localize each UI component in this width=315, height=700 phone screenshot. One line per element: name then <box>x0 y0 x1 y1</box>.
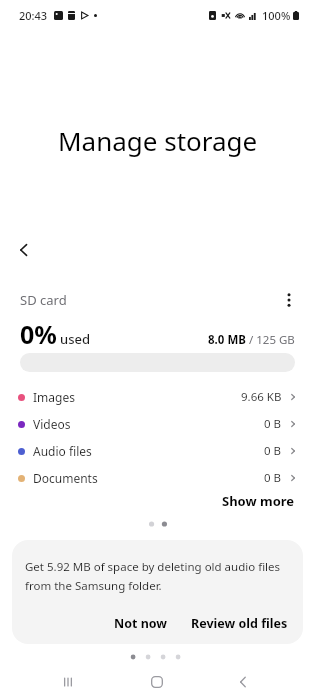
staticText: 9.66 KB <box>241 389 282 405</box>
staticText: Images <box>33 389 75 405</box>
button[interactable]: Images <box>0 386 315 408</box>
staticText: Review old files <box>191 615 288 632</box>
button[interactable]: Audio files <box>0 440 315 462</box>
staticText: 0 B <box>264 443 282 459</box>
button[interactable]: Back <box>6 232 42 268</box>
staticText: Not now <box>114 615 168 632</box>
staticText: from the Samsung folder. <box>25 578 162 594</box>
staticText: Documents <box>33 470 98 486</box>
staticText: Videos <box>33 416 71 432</box>
staticText: / 125 GB <box>249 332 295 348</box>
staticText: 0 B <box>264 416 282 432</box>
button[interactable]: Back <box>225 664 261 700</box>
staticText: Get 5.92 MB of space by deleting old aud… <box>25 559 281 575</box>
staticText: 100% <box>262 8 291 23</box>
staticText: 0 B <box>264 470 282 486</box>
staticText: Audio files <box>33 443 92 459</box>
button[interactable]: More options <box>275 286 303 314</box>
staticText: 8.0 MB <box>208 332 246 348</box>
button[interactable]: Recents <box>50 664 86 700</box>
button[interactable]: Home <box>139 664 175 700</box>
staticText: 20:43 <box>19 8 48 23</box>
button[interactable]: Videos <box>0 413 315 435</box>
button[interactable]: Review old files <box>189 609 290 638</box>
button[interactable]: Not now <box>106 609 176 638</box>
staticText: Show more <box>222 492 295 510</box>
staticText: SD card <box>20 291 67 309</box>
button[interactable]: Show more <box>202 488 315 514</box>
button[interactable]: Documents <box>0 467 315 489</box>
staticText: 0% <box>20 317 57 351</box>
staticText: used <box>60 330 90 348</box>
staticText: Manage storage <box>58 123 258 158</box>
